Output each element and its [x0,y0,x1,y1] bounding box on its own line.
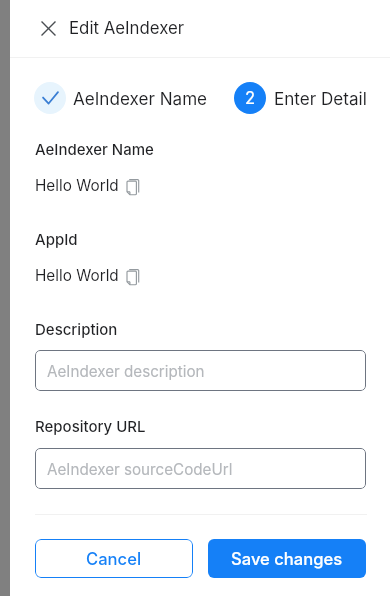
button[interactable]: Copy [123,177,143,197]
staticText: AppId [35,230,78,248]
staticText: Save changes [231,549,343,569]
staticText: Hello World [35,266,119,285]
staticText: Enter Detail [274,88,367,109]
button[interactable]: AeIndexer description [35,350,366,391]
button[interactable]: Copy [123,267,143,287]
staticText: AeIndexer description [47,362,205,380]
staticText: Cancel [86,549,142,569]
staticText: AeIndexer sourceCodeUrl [47,460,233,478]
staticText: Hello World [35,176,119,195]
button[interactable]: Save changes [208,539,366,578]
button[interactable]: AeIndexer sourceCodeUrl [35,448,366,489]
staticText: Description [35,320,118,338]
staticText: Repository URL [35,417,146,435]
button[interactable]: Close [34,14,62,42]
staticText: Edit AeIndexer [69,18,185,38]
staticText: AeIndexer Name [73,88,208,109]
staticText: AeIndexer Name [35,140,154,158]
staticText: 2 [245,88,256,108]
button[interactable]: Cancel [35,539,193,578]
